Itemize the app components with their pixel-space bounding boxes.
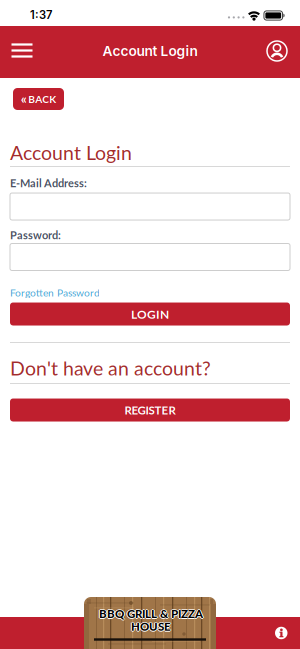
staticText: LOGIN — [131, 307, 169, 321]
staticText: BBQ GRILL & PIZZA — [98, 607, 202, 620]
staticText: Password: — [10, 228, 61, 242]
staticText: HOUSE — [130, 619, 170, 633]
staticText: Forgotten Password — [10, 286, 100, 299]
staticText: 1:37 — [30, 8, 52, 22]
staticText: REGISTER — [124, 403, 175, 417]
staticText: BBQ GRILL & PIZZA — [100, 607, 204, 620]
staticText: HOUSE — [132, 619, 172, 633]
staticText: « — [21, 90, 27, 106]
staticText: BBQ GRILL & PIZZA — [99, 608, 203, 621]
staticText: Don't have an account? — [10, 356, 211, 380]
staticText: E-Mail Address: — [10, 176, 87, 190]
staticText: HOUSE — [131, 619, 171, 633]
staticText: Account Login — [10, 141, 132, 164]
staticText: BBQ GRILL & PIZZA — [99, 607, 203, 620]
staticText: BBQ GRILL & PIZZA — [99, 606, 203, 620]
staticText: HOUSE — [131, 619, 171, 632]
staticText: BACK — [28, 93, 56, 105]
staticText: HOUSE — [131, 620, 171, 634]
staticText: Account Login — [102, 43, 197, 59]
